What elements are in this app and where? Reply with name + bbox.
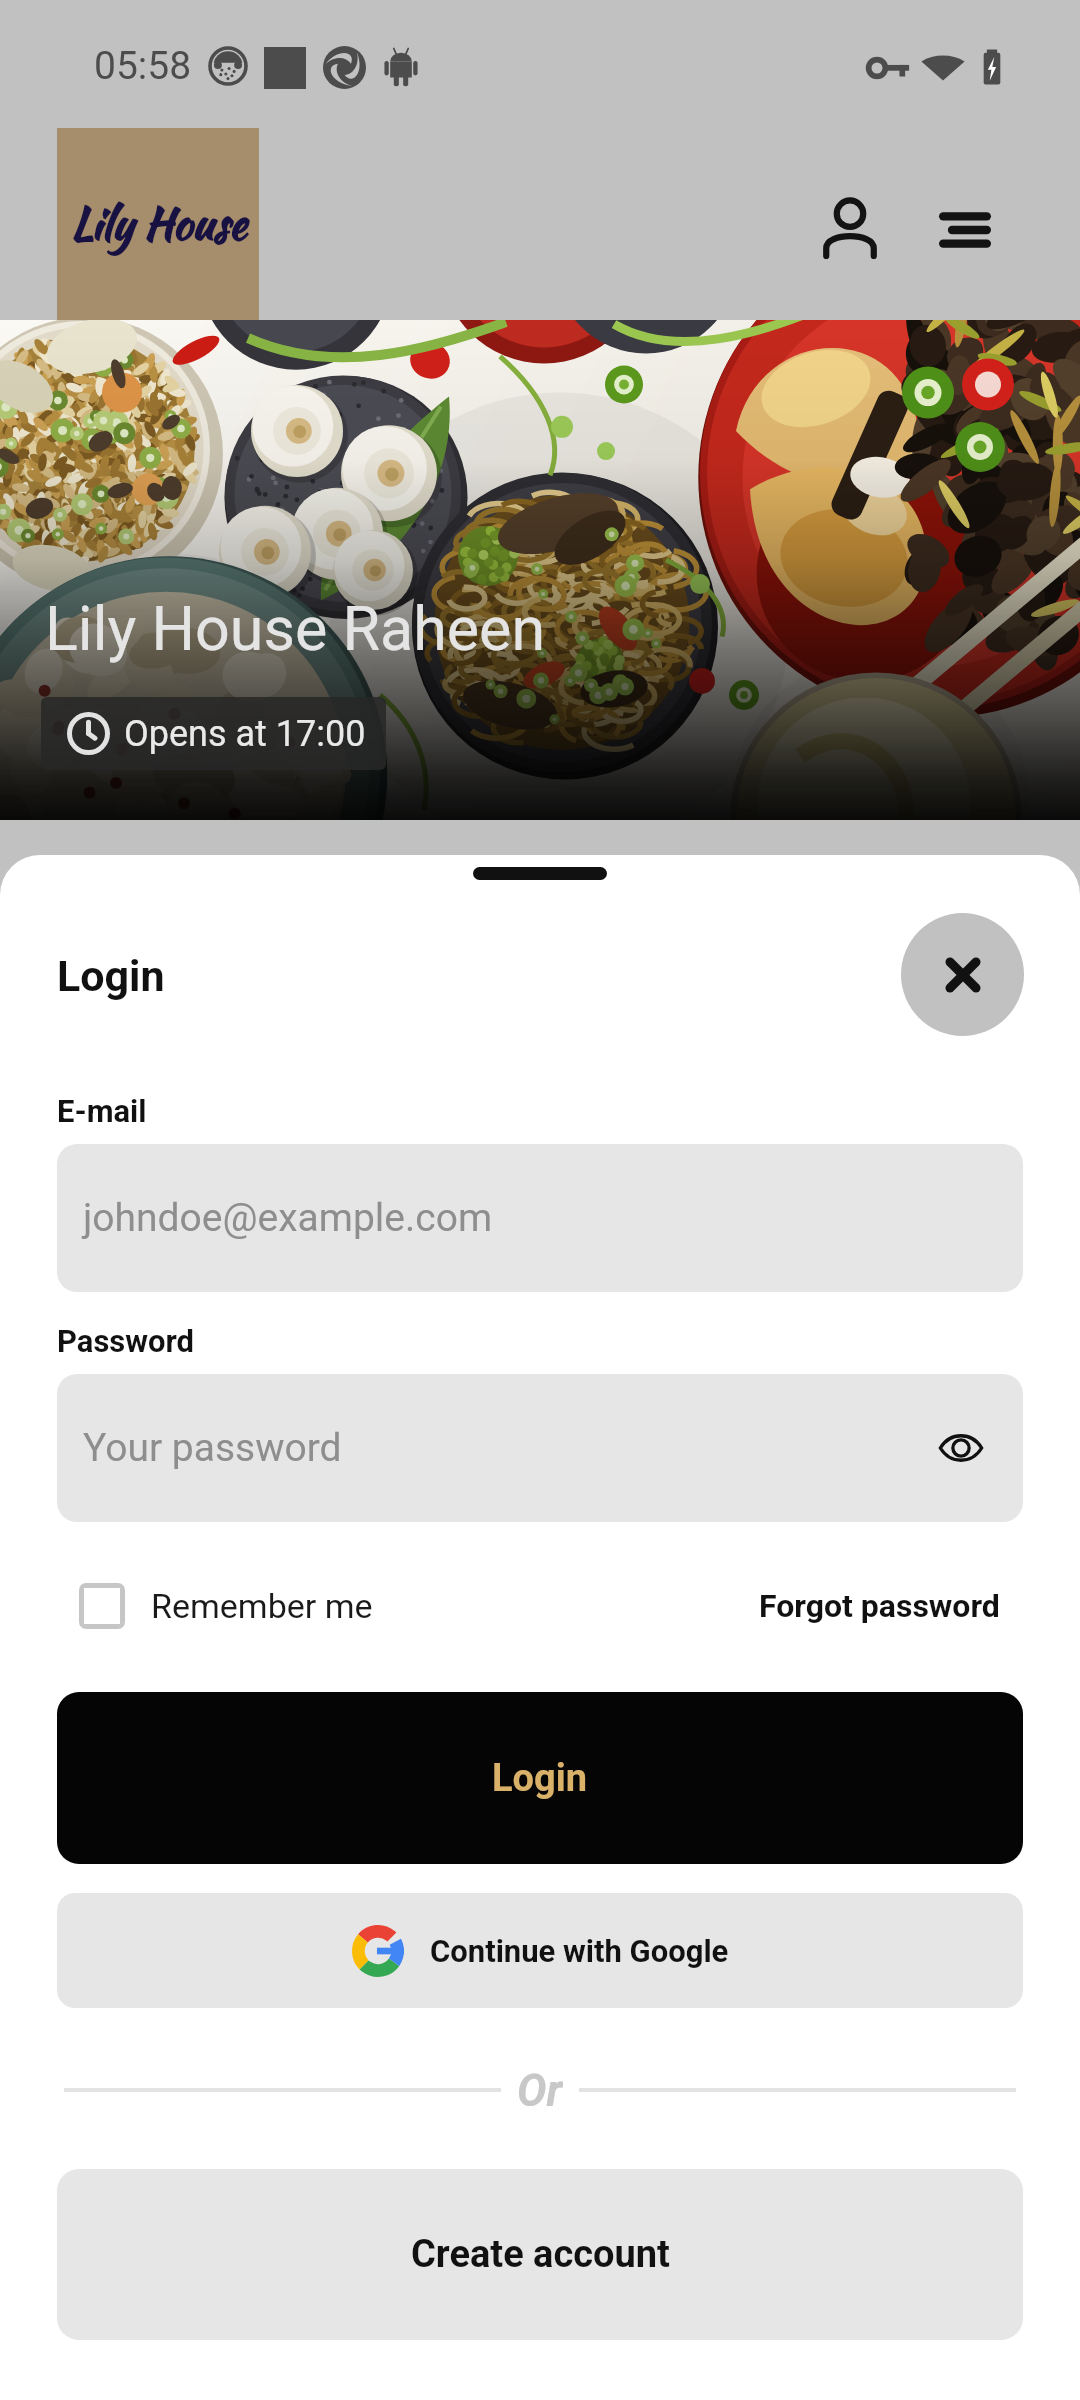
button[interactable]: Show password [917,1404,1005,1492]
staticText: johndoe@example.com [83,1195,493,1241]
button[interactable]: Menu [921,186,1009,274]
button[interactable]: johndoe@example.com [57,1144,1023,1292]
staticText: Your password [83,1425,342,1471]
button[interactable]: Continue with Google [57,1893,1023,2008]
staticText: Lily House [70,192,246,256]
button[interactable]: Your password [57,1374,1023,1522]
staticText: Remember me [151,1586,373,1626]
button[interactable]: Create account [57,2169,1023,2340]
staticText: E-mail [57,1093,147,1129]
button[interactable]: Remember me [57,1575,383,1637]
button[interactable]: Login [57,1692,1023,1864]
staticText: Login [492,1756,588,1801]
button[interactable]: Opens at 17:00 [41,697,386,770]
staticText: Login [57,951,165,1001]
button[interactable]: Forgot password [747,1579,1080,1633]
staticText: Continue with Google [430,1933,729,1969]
staticText: Create account [411,2232,670,2277]
staticText: 05:58 [94,43,192,89]
staticText: Opens at 17:00 [124,713,366,755]
button[interactable]: Close [901,913,1024,1036]
staticText: Or [517,2065,563,2115]
staticText: Lily House Raheen [45,593,546,664]
staticText: Password [57,1323,195,1359]
button[interactable]: Account [806,185,894,273]
button[interactable]: Lily House home [57,128,259,320]
